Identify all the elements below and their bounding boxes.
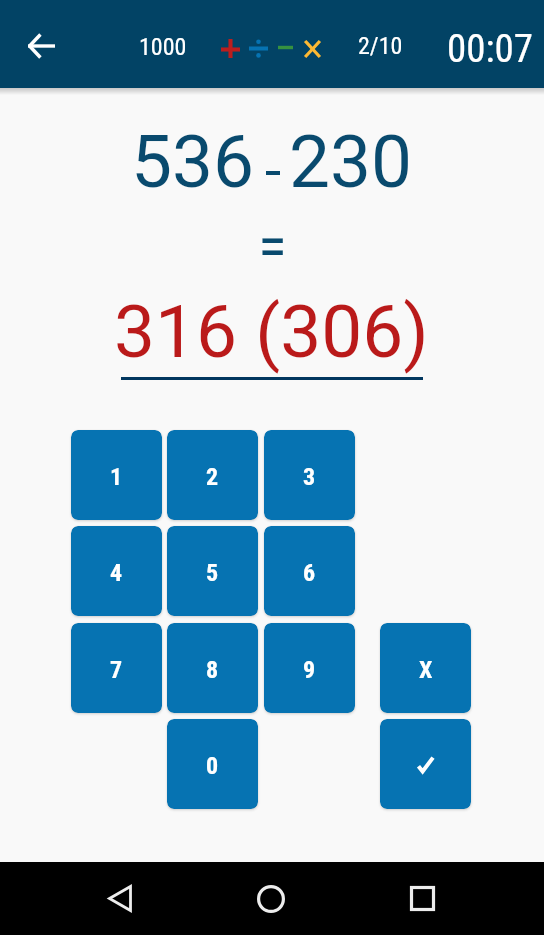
button[interactable]: 4 (71, 526, 162, 616)
button[interactable]: Back (10, 18, 72, 74)
staticText: X (419, 656, 433, 684)
button[interactable]: 1 (71, 430, 162, 520)
staticText: 1 (110, 463, 123, 491)
staticText: 0 (206, 752, 219, 780)
button[interactable]: Back (60, 862, 180, 935)
staticText: 316 (306) (114, 289, 429, 375)
button[interactable]: X (380, 623, 471, 713)
staticText: 4 (110, 559, 123, 587)
staticText: = (258, 211, 287, 281)
button[interactable]: 9 (264, 623, 355, 713)
button[interactable]: 7 (71, 623, 162, 713)
staticText: 2 (206, 463, 219, 491)
button[interactable]: Home (211, 862, 331, 935)
staticText: 3 (303, 463, 316, 491)
staticText: 9 (303, 656, 316, 684)
button[interactable] (380, 719, 471, 809)
button[interactable]: Recent apps (362, 862, 482, 935)
button[interactable]: 5 (167, 526, 258, 616)
button[interactable]: 6 (264, 526, 355, 616)
staticText: 7 (110, 656, 123, 684)
staticText: 00:07 (447, 26, 534, 72)
button[interactable]: 2 (167, 430, 258, 520)
button[interactable]: 3 (264, 430, 355, 520)
staticText: 230 (289, 119, 413, 205)
staticText: 1000 (139, 33, 187, 61)
staticText: 536 (131, 119, 255, 205)
staticText: 6 (303, 559, 316, 587)
staticText: 2/10 (358, 32, 403, 60)
staticText: 5 (206, 559, 219, 587)
button[interactable]: 8 (167, 623, 258, 713)
staticText: 8 (206, 656, 219, 684)
button[interactable]: 0 (167, 719, 258, 809)
